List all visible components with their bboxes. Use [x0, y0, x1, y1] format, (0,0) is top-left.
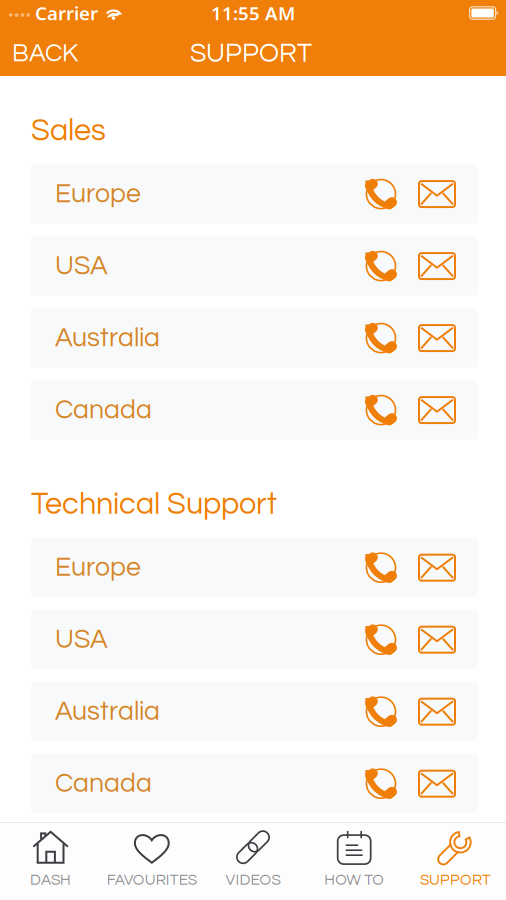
button[interactable]: DASH [0, 822, 101, 900]
button[interactable]: VIDEOS [202, 822, 304, 900]
staticText: USA [55, 252, 108, 280]
staticText: Sales [31, 115, 106, 147]
button[interactable]: Call Europe [353, 538, 409, 597]
button[interactable]: Email Europe [409, 538, 465, 597]
button[interactable]: Call Australia [353, 682, 409, 741]
staticText: DASH [30, 872, 71, 888]
button[interactable]: Email Australia [409, 682, 465, 741]
button[interactable]: Email USA [409, 610, 465, 669]
staticText: USA [55, 626, 108, 653]
button[interactable]: HOW TO [304, 822, 405, 900]
button[interactable]: Call USA [353, 610, 409, 669]
button[interactable]: Call Canada [353, 754, 409, 813]
staticText: SUPPORT [420, 872, 491, 888]
staticText: Europe [55, 180, 141, 208]
staticText: Canada [55, 770, 152, 797]
button[interactable]: Email Canada [409, 381, 465, 440]
button[interactable]: FAVOURITES [101, 822, 202, 900]
button[interactable]: Email Canada [409, 754, 465, 813]
staticText: VIDEOS [225, 872, 280, 888]
button[interactable]: Email Australia [409, 309, 465, 368]
staticText: 11:55 AM [211, 1, 295, 25]
staticText: BACK [12, 40, 78, 67]
staticText: Australia [55, 698, 160, 725]
staticText: Canada [55, 396, 152, 424]
staticText: Carrier [35, 1, 98, 25]
staticText: Europe [55, 554, 141, 581]
staticText: SUPPORT [190, 40, 312, 67]
button[interactable]: SUPPORT [405, 822, 506, 900]
button[interactable]: BACK [0, 26, 90, 76]
button[interactable]: Call Australia [353, 309, 409, 368]
staticText: FAVOURITES [107, 872, 197, 888]
staticText: Australia [55, 324, 160, 352]
button[interactable]: Email Europe [409, 165, 465, 224]
button[interactable]: Call Europe [353, 165, 409, 224]
staticText: HOW TO [324, 872, 384, 888]
button[interactable]: Email USA [409, 237, 465, 296]
staticText: Technical Support [31, 489, 277, 520]
button[interactable]: Call USA [353, 237, 409, 296]
button[interactable]: Call Canada [353, 381, 409, 440]
